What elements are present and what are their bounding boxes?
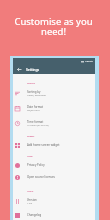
staticText: dd Jan 2019 xyxy=(27,109,40,112)
staticText: Legal xyxy=(27,155,33,158)
button[interactable]: Privacy Policy xyxy=(13,159,95,171)
staticText: Open source licenses xyxy=(27,175,55,179)
staticText: Widget xyxy=(27,135,35,138)
staticText: Name, ascending xyxy=(27,94,46,97)
button[interactable]: Changelog xyxy=(13,209,95,220)
staticText: Add home screen widget xyxy=(27,143,60,147)
staticText: Customise as you need! xyxy=(0,15,107,38)
staticText: Version xyxy=(27,198,37,202)
button[interactable]: Version xyxy=(13,194,95,209)
staticText: Changelog xyxy=(27,213,42,217)
staticText: Settings xyxy=(26,67,40,72)
button[interactable]: Back xyxy=(15,65,23,73)
button[interactable]: Add home screen widget xyxy=(13,139,95,151)
staticText: 12 hours (01:30 PM) xyxy=(27,124,49,127)
staticText: About xyxy=(27,190,34,193)
button[interactable]: Time format xyxy=(13,116,95,131)
button[interactable]: Open source licenses xyxy=(13,171,95,183)
staticText: Privacy Policy xyxy=(27,163,45,167)
button[interactable]: Date format xyxy=(13,101,95,116)
staticText: Date format xyxy=(27,105,43,109)
staticText: 1:30 PM xyxy=(85,60,93,63)
button[interactable]: Sorting by xyxy=(13,86,95,101)
staticText: 1.0.0 xyxy=(27,202,33,205)
staticText: Sorting by xyxy=(27,90,41,94)
staticText: Time format xyxy=(27,120,44,124)
staticText: General xyxy=(27,82,36,85)
